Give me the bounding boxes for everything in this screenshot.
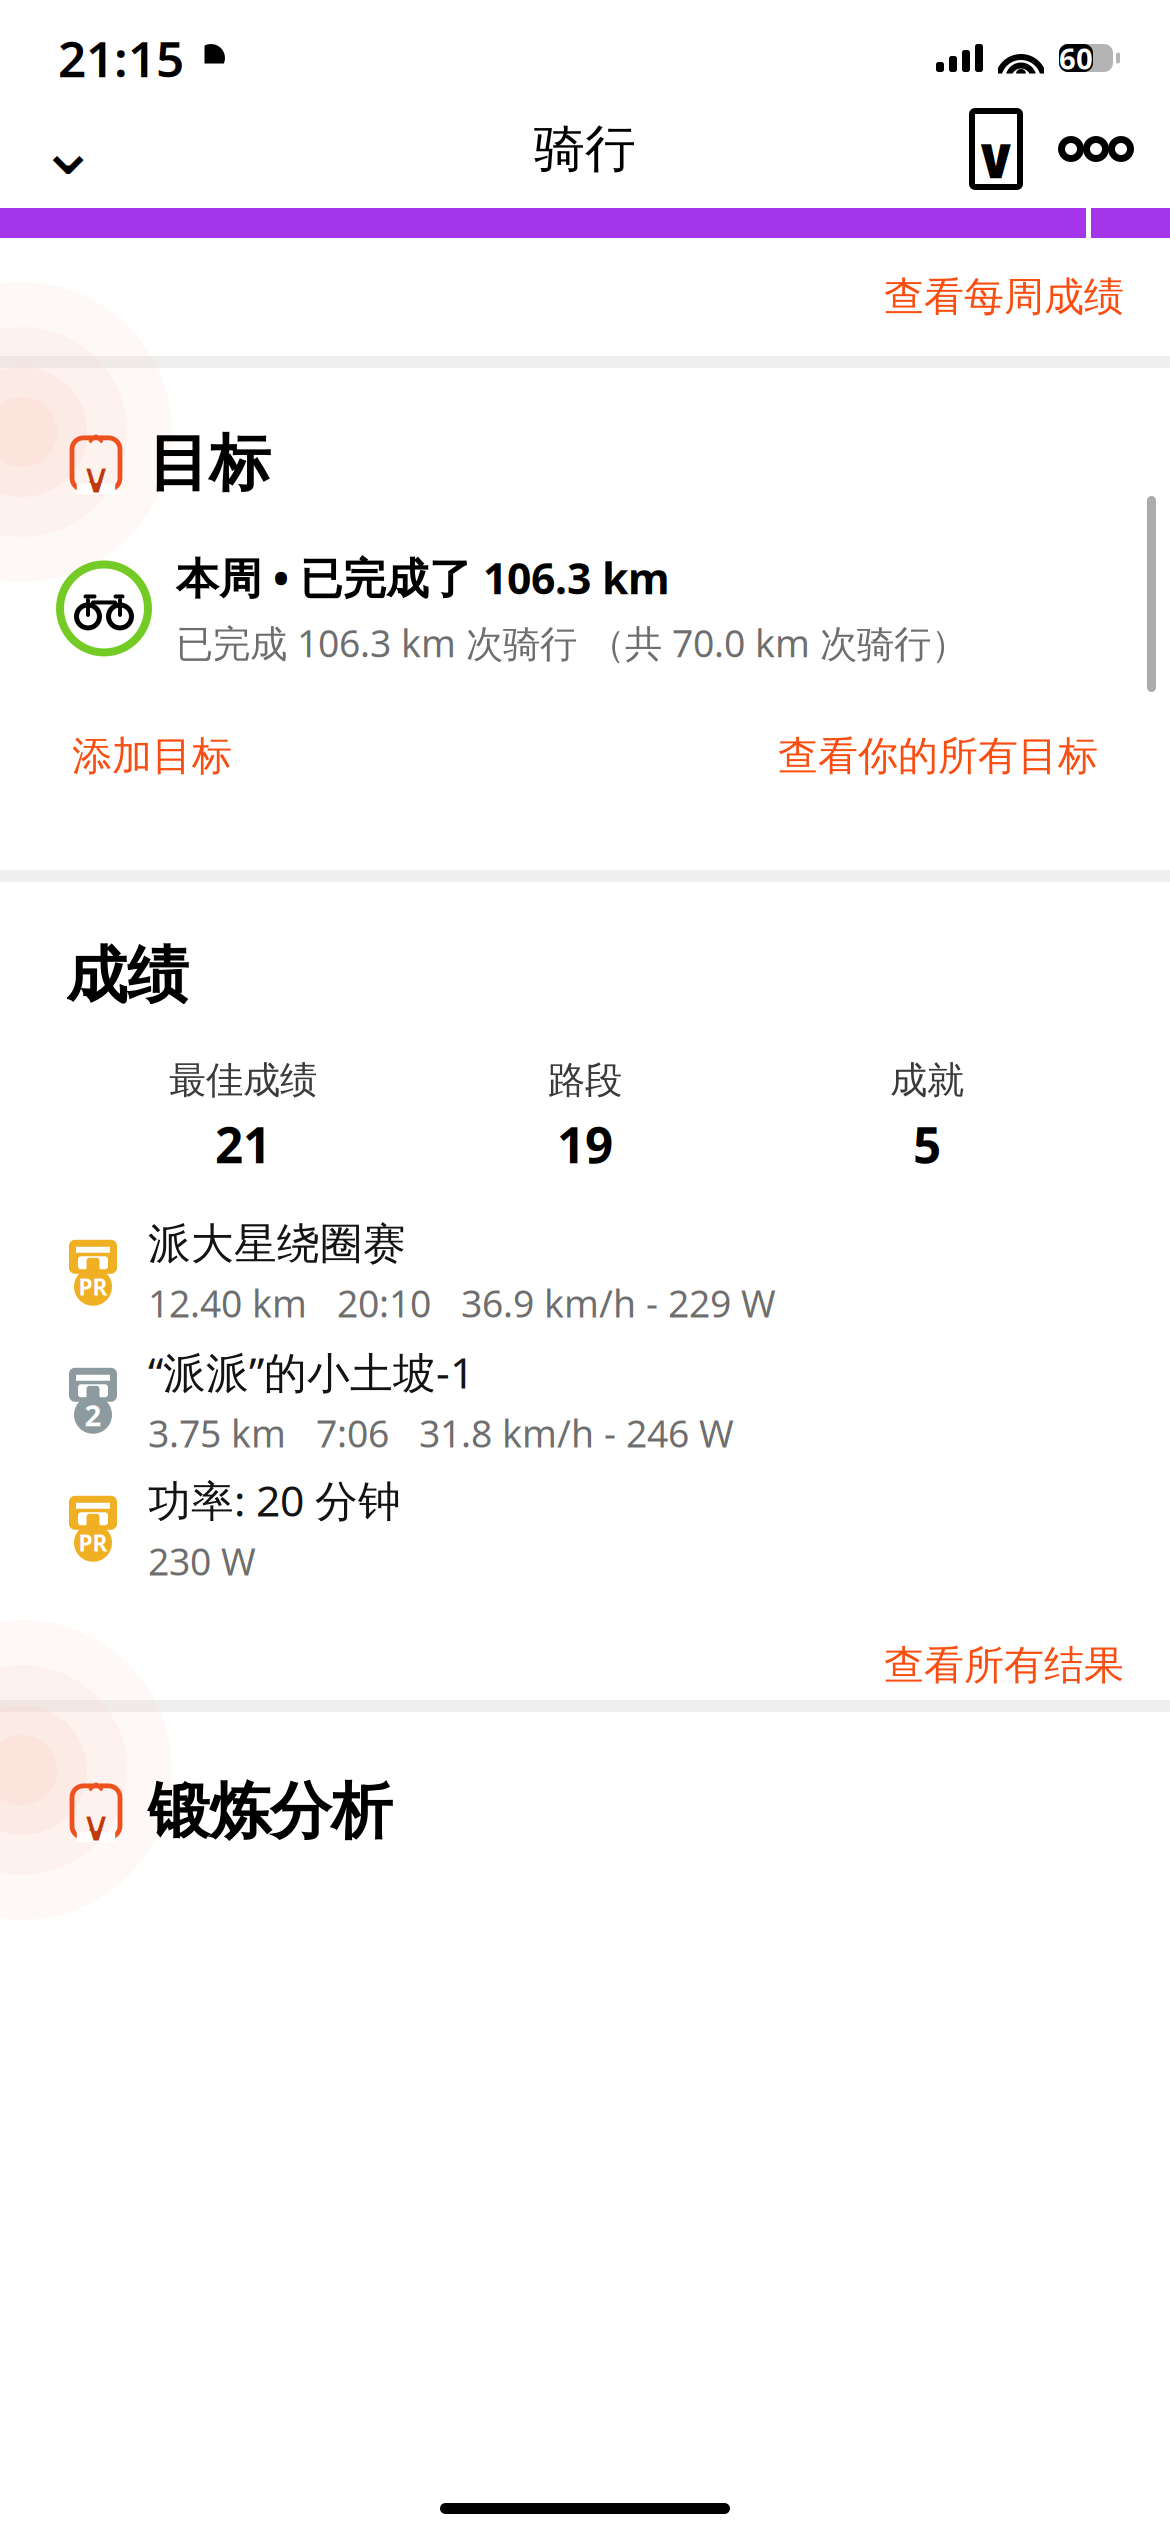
staticText: 3.75 km 7:06 31.8 km/h - 246 W xyxy=(148,1408,734,1458)
staticText: ∨ xyxy=(81,455,111,501)
staticText: 查看每周成绩 xyxy=(884,272,1124,321)
staticText: 19 xyxy=(557,1111,613,1177)
staticText: 230 W xyxy=(148,1536,256,1586)
staticText: 查看你的所有目标 xyxy=(778,732,1098,781)
staticText: 60 xyxy=(1059,38,1093,77)
staticText: ⌄ xyxy=(83,1808,108,1842)
button[interactable]: 查看所有结果 xyxy=(878,1615,1130,1716)
staticText: ∨ xyxy=(972,125,1020,191)
staticText: 本周 • 已完成了 106.3 km xyxy=(176,549,670,606)
button[interactable]: 2 xyxy=(0,1337,1170,1465)
button[interactable]: 收起 xyxy=(18,99,118,199)
staticText: 派大星绕圈赛 xyxy=(148,1218,406,1270)
staticText: 功率: 20 分钟 xyxy=(148,1472,401,1528)
staticText: 最佳成绩 xyxy=(169,1057,317,1103)
staticText: 目标 xyxy=(148,426,270,501)
staticText: 查看所有结果 xyxy=(884,1641,1124,1690)
button[interactable]: 查看你的所有目标 xyxy=(772,706,1104,807)
staticText: 成绩 xyxy=(66,938,188,1013)
staticText: ⌄ xyxy=(83,460,108,494)
staticText: PR xyxy=(78,1528,107,1558)
staticText: 2 xyxy=(84,1395,101,1434)
staticText: “派派”的小土坡-1 xyxy=(148,1344,474,1400)
staticText: 21:15 xyxy=(58,25,184,91)
staticText: ∨ xyxy=(81,1803,111,1849)
staticText: 21 xyxy=(215,1111,271,1177)
staticText: ⌃ xyxy=(82,1777,110,1814)
button[interactable]: 添加目标 xyxy=(66,706,238,807)
staticText: 已完成 106.3 km 次骑行 （共 70.0 km 次骑行） xyxy=(176,618,968,668)
button[interactable]: ∨ xyxy=(0,1712,1170,1849)
staticText: ⌄ xyxy=(38,108,98,190)
staticText: 骑行 xyxy=(534,118,636,180)
staticText: 成就 xyxy=(890,1057,964,1103)
staticText: 12.40 km 20:10 36.9 km/h - 229 W xyxy=(148,1278,776,1328)
staticText: 5 xyxy=(913,1111,941,1177)
button[interactable]: PR xyxy=(0,1465,1170,1593)
staticText: ⌃ xyxy=(82,429,110,466)
staticText: 路段 xyxy=(548,1057,622,1103)
staticText: 锻炼分析 xyxy=(148,1774,392,1849)
button[interactable]: 收藏 xyxy=(946,99,1046,199)
button[interactable]: 查看每周成绩 xyxy=(878,246,1130,347)
button[interactable]: 更多选项 xyxy=(1046,99,1146,199)
button[interactable]: PR xyxy=(0,1209,1170,1337)
staticText: PR xyxy=(78,1272,107,1302)
button[interactable]: 本周 • 已完成了 106.3 km xyxy=(0,501,1170,667)
staticText: 添加目标 xyxy=(72,732,232,781)
